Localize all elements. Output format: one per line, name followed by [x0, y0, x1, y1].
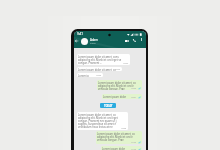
button[interactable]: Lorem ipsum dolor sit amet, co — [77, 67, 122, 71]
staticText: Lorem ipsum dolor — [103, 95, 127, 99]
staticText: 10:25 — [96, 74, 102, 77]
button[interactable]: Profile photo — [81, 38, 88, 45]
staticText: Lorem ipsum dolor sit amet, co — [98, 81, 136, 85]
button[interactable]: Lorem ipsum dolor sit amet, co — [77, 112, 128, 130]
button[interactable]: Lorem ipsum dolor sit amet, cons — [77, 54, 130, 65]
staticText: Lorem ipsum dolor — [102, 147, 126, 150]
staticText: Lorem ip — [78, 74, 89, 77]
staticText: vestibulum risus lectus at ne — [78, 125, 113, 129]
staticText: Lorem ipsum dolor sit amet, co — [78, 113, 116, 117]
staticText: congue. Praesent nec quam ut j — [78, 119, 117, 123]
staticText: adipiscing elit. Morbi et orci e — [98, 84, 134, 88]
staticText: sagittis. Suspendisse sit amet e — [78, 122, 116, 126]
staticText: vehicula congue. Prae — [98, 87, 125, 90]
staticText: 11:05 — [131, 148, 137, 150]
button[interactable]: Lorem ipsum dolor sit amet, co — [96, 131, 142, 144]
staticText: 9:41 — [77, 32, 84, 36]
staticText: 10:31 — [131, 96, 137, 99]
button[interactable]: Lorem ipsum dolor sit amet, co — [97, 80, 142, 90]
staticText: adipiscing elit. Morbi et orci eget — [78, 116, 118, 120]
staticText: Adam — [90, 38, 98, 42]
staticText: adipiscing elit. Morbi et orci e — [97, 135, 133, 139]
staticText: 10:30 — [131, 87, 137, 90]
staticText: 10:24 — [123, 62, 129, 65]
staticText: Lorem ipsum dolor sit amet, cons — [78, 55, 119, 59]
staticText: adipiscing elit. Morbi et orci eget ve — [78, 58, 122, 62]
button[interactable]: More options — [139, 37, 144, 42]
staticText: online — [90, 42, 96, 45]
button[interactable]: Lorem ip — [77, 73, 103, 77]
staticText: vehicula congue. Prae — [97, 138, 124, 142]
staticText: Lorem ipsum dolor sit amet, co — [78, 68, 116, 71]
button[interactable]: Lorem ipsum dolor — [102, 94, 142, 99]
button[interactable]: Back — [74, 37, 80, 44]
staticText: Lorem ipsum dolor sit amet, co — [97, 132, 135, 136]
button[interactable]: TODAY — [100, 103, 116, 108]
button[interactable]: Lorem ipsum dolor — [101, 146, 142, 150]
staticText: 10:58 — [121, 127, 127, 130]
staticText: TODAY — [104, 104, 113, 107]
staticText: congue. Praesent ... — [78, 61, 102, 65]
button[interactable]: Call — [131, 37, 138, 44]
button[interactable]: Video call — [123, 37, 130, 44]
staticText: 11:02 — [131, 141, 137, 144]
staticText: 10:25 — [115, 68, 121, 71]
